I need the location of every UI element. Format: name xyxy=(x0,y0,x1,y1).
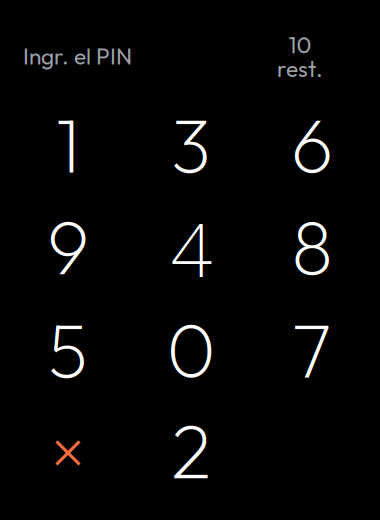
button[interactable]: 0 xyxy=(132,299,250,399)
button[interactable]: 4 xyxy=(132,196,250,296)
staticText: 8 xyxy=(291,199,332,294)
staticText: Ingr. el PIN xyxy=(23,42,132,70)
staticText: 3 xyxy=(171,97,211,191)
staticText: 2 xyxy=(171,403,211,498)
button[interactable]: 2 xyxy=(132,400,250,500)
staticText: 10 xyxy=(288,30,311,59)
staticText: 6 xyxy=(291,97,333,191)
button[interactable]: 7 xyxy=(253,299,371,399)
button[interactable]: Delete xyxy=(9,400,127,500)
button[interactable]: 6 xyxy=(253,94,371,194)
button[interactable]: 5 xyxy=(9,299,127,399)
button[interactable]: 8 xyxy=(253,196,371,296)
staticText: 5 xyxy=(48,302,88,396)
staticText: 7 xyxy=(292,302,332,396)
staticText: 0 xyxy=(166,302,215,396)
staticText: 9 xyxy=(47,199,89,294)
staticText: 1 xyxy=(55,97,80,191)
staticText: 4 xyxy=(170,201,213,300)
button[interactable]: 1 xyxy=(9,94,127,194)
button[interactable]: 9 xyxy=(9,196,127,296)
button[interactable]: 3 xyxy=(132,94,250,194)
staticText: rest. xyxy=(277,54,323,83)
